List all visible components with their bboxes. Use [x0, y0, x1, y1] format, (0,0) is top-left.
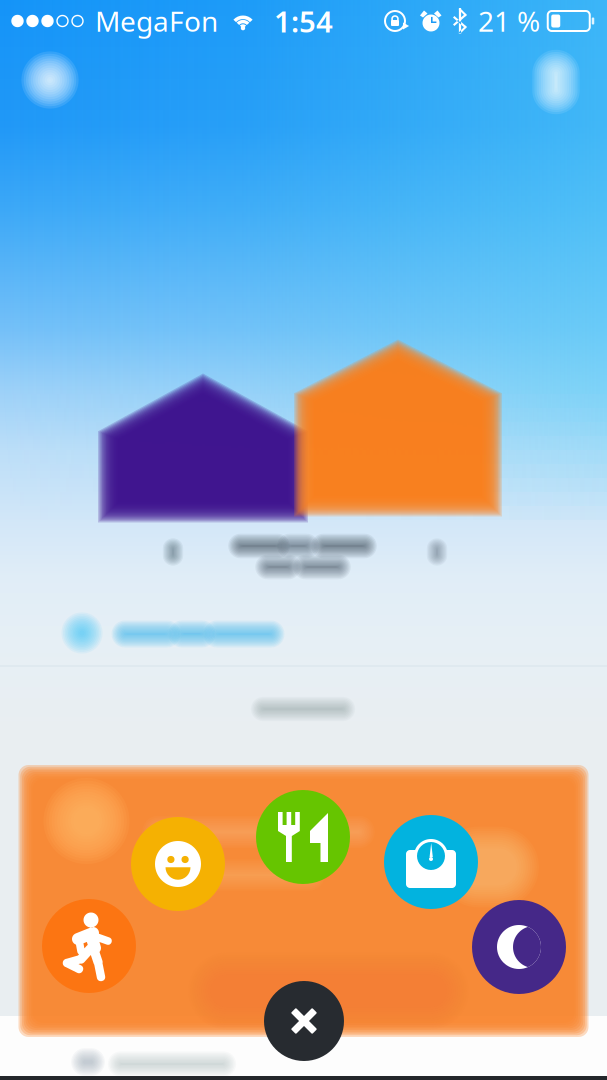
button[interactable]: Sleep: [472, 900, 566, 994]
staticText: MegaFon: [95, 2, 218, 40]
staticText: 1:54: [274, 1, 333, 40]
button[interactable]: Mood: [131, 817, 225, 911]
button[interactable]: Food: [256, 790, 350, 884]
button[interactable]: Weight: [384, 815, 478, 909]
button[interactable]: Activity: [42, 899, 136, 993]
staticText: 21 %: [478, 2, 540, 40]
button[interactable]: Close: [264, 981, 344, 1061]
